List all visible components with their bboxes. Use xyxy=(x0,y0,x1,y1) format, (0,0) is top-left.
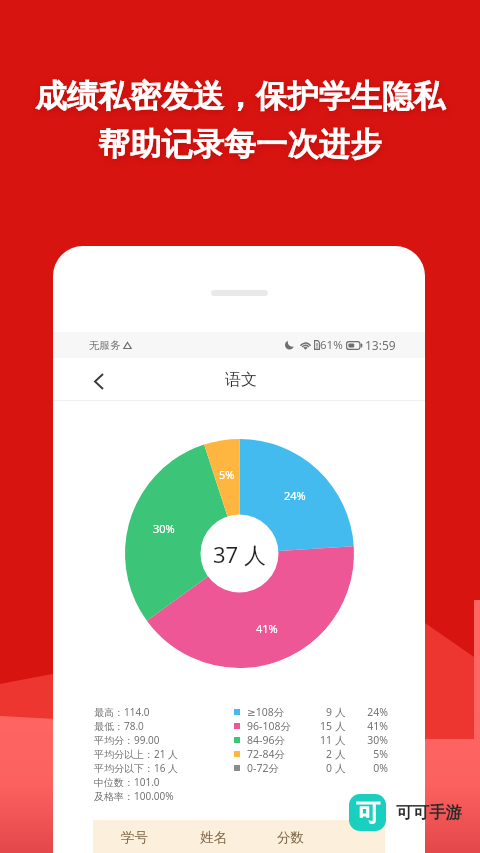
staticText: 41% xyxy=(346,719,388,733)
staticText: 37 人 xyxy=(213,539,266,569)
staticText: 人 xyxy=(335,706,346,719)
staticText: 96-108分 xyxy=(247,719,291,733)
staticText: 中位数：101.0 xyxy=(94,775,160,789)
button[interactable]: Back xyxy=(82,364,116,398)
staticText: 成绩私密发送，保护学生隐私 xyxy=(35,77,445,117)
staticText: 72-84分 xyxy=(247,747,285,761)
staticText: 11 xyxy=(314,733,332,747)
staticText: 语文 xyxy=(225,370,257,390)
staticText: 及格率：100.00% xyxy=(94,789,174,803)
staticText: 24% xyxy=(346,705,388,719)
staticText: 可可手游 xyxy=(396,802,462,823)
staticText: 人 xyxy=(335,720,346,733)
staticText: 分数 xyxy=(277,829,304,846)
staticText: 5% xyxy=(346,747,388,761)
staticText: 2 xyxy=(314,747,332,761)
staticText: 最低：78.0 xyxy=(94,719,144,733)
staticText: 61% xyxy=(320,337,343,353)
staticText: 41% xyxy=(256,621,278,636)
staticText: 平均分以上：21 人 xyxy=(94,747,179,761)
staticText: 5% xyxy=(219,467,235,482)
staticText: 0% xyxy=(346,761,388,775)
staticText: 24% xyxy=(284,488,306,503)
staticText: 0 xyxy=(314,761,332,775)
staticText: 30% xyxy=(153,521,175,536)
staticText: 人 xyxy=(335,748,346,761)
staticText: ≥108分 xyxy=(247,705,285,719)
button[interactable]: 姓名 xyxy=(188,820,238,853)
staticText: 姓名 xyxy=(200,829,227,846)
staticText: 13:59 xyxy=(365,337,396,353)
staticText: 平均分：99.00 xyxy=(94,733,160,747)
staticText: 无服务 xyxy=(89,339,121,352)
staticText: 0-72分 xyxy=(247,761,279,775)
staticText: 帮助记录每一次进步 xyxy=(98,125,382,165)
staticText: 30% xyxy=(346,733,388,747)
staticText: 可 xyxy=(356,798,380,828)
staticText: 9 xyxy=(314,705,332,719)
staticText: 人 xyxy=(335,734,346,747)
staticText: 15 xyxy=(314,719,332,733)
staticText: 人 xyxy=(335,762,346,775)
button[interactable]: 学号 xyxy=(109,820,159,853)
staticText: 84-96分 xyxy=(247,733,285,747)
staticText: 平均分以下：16 人 xyxy=(94,761,179,775)
button[interactable]: 分数 xyxy=(265,820,315,853)
staticText: 最高：114.0 xyxy=(94,705,150,719)
staticText: 学号 xyxy=(121,829,148,846)
